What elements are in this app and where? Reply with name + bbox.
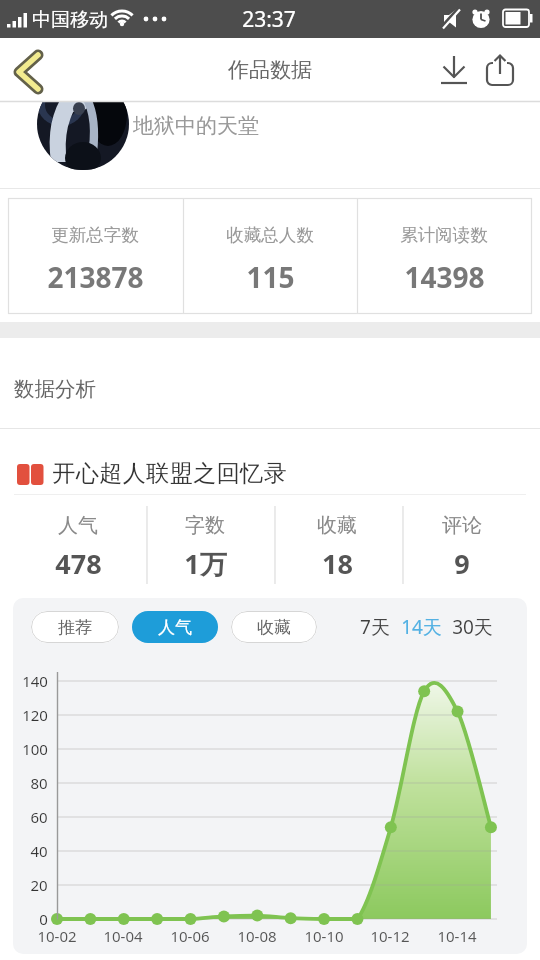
- staticText: 7天: [360, 614, 390, 640]
- staticText: 收藏: [317, 513, 357, 538]
- staticText: 10-06: [170, 926, 210, 946]
- staticText: 40: [30, 841, 48, 861]
- staticText: 收藏总人数: [226, 224, 314, 246]
- button[interactable]: [8, 48, 54, 94]
- staticText: 收藏: [257, 617, 291, 638]
- staticText: 120: [22, 705, 48, 725]
- staticText: 人气: [58, 513, 98, 538]
- staticText: 10-04: [103, 926, 143, 946]
- staticText: 80: [30, 773, 48, 793]
- staticText: 人气: [158, 617, 192, 638]
- staticText: 140: [22, 671, 48, 691]
- staticText: 60: [30, 807, 48, 827]
- staticText: 213878: [47, 258, 144, 296]
- button[interactable]: 30天: [444, 613, 500, 641]
- staticText: 115: [246, 258, 295, 296]
- staticText: 开心超人联盟之回忆录: [52, 459, 287, 488]
- staticText: 数据分析: [14, 376, 96, 402]
- staticText: 478: [55, 545, 102, 580]
- staticText: 10-12: [370, 926, 410, 946]
- staticText: 9: [454, 545, 470, 580]
- staticText: 累计阅读数: [400, 224, 488, 246]
- button[interactable]: [0, 102, 540, 188]
- button[interactable]: [478, 50, 524, 94]
- button[interactable]: 收藏: [231, 611, 317, 643]
- button[interactable]: 人气: [132, 611, 218, 643]
- staticText: 100: [22, 739, 48, 759]
- button[interactable]: 7天: [350, 613, 400, 641]
- staticText: 30天: [452, 614, 493, 640]
- staticText: 10-02: [37, 926, 77, 946]
- staticText: 23:37: [242, 5, 296, 34]
- staticText: 中国移动: [32, 8, 108, 32]
- staticText: 18: [322, 545, 353, 580]
- button[interactable]: 14天: [393, 613, 449, 641]
- staticText: 评论: [442, 513, 482, 538]
- staticText: 20: [30, 875, 48, 895]
- button[interactable]: [0, 452, 540, 494]
- button[interactable]: 推荐: [31, 611, 119, 643]
- staticText: 推荐: [58, 617, 92, 638]
- staticText: 10-10: [304, 926, 344, 946]
- staticText: 14天: [401, 614, 442, 640]
- staticText: 1万: [184, 545, 227, 580]
- staticText: 更新总字数: [51, 224, 139, 246]
- staticText: 14398: [404, 258, 485, 296]
- staticText: 10-08: [237, 926, 277, 946]
- staticText: 字数: [185, 513, 225, 538]
- staticText: 地狱中的天堂: [133, 113, 259, 139]
- staticText: 0: [39, 909, 48, 929]
- staticText: 10-14: [437, 926, 477, 946]
- staticText: 作品数据: [228, 57, 312, 83]
- button[interactable]: [430, 50, 476, 94]
